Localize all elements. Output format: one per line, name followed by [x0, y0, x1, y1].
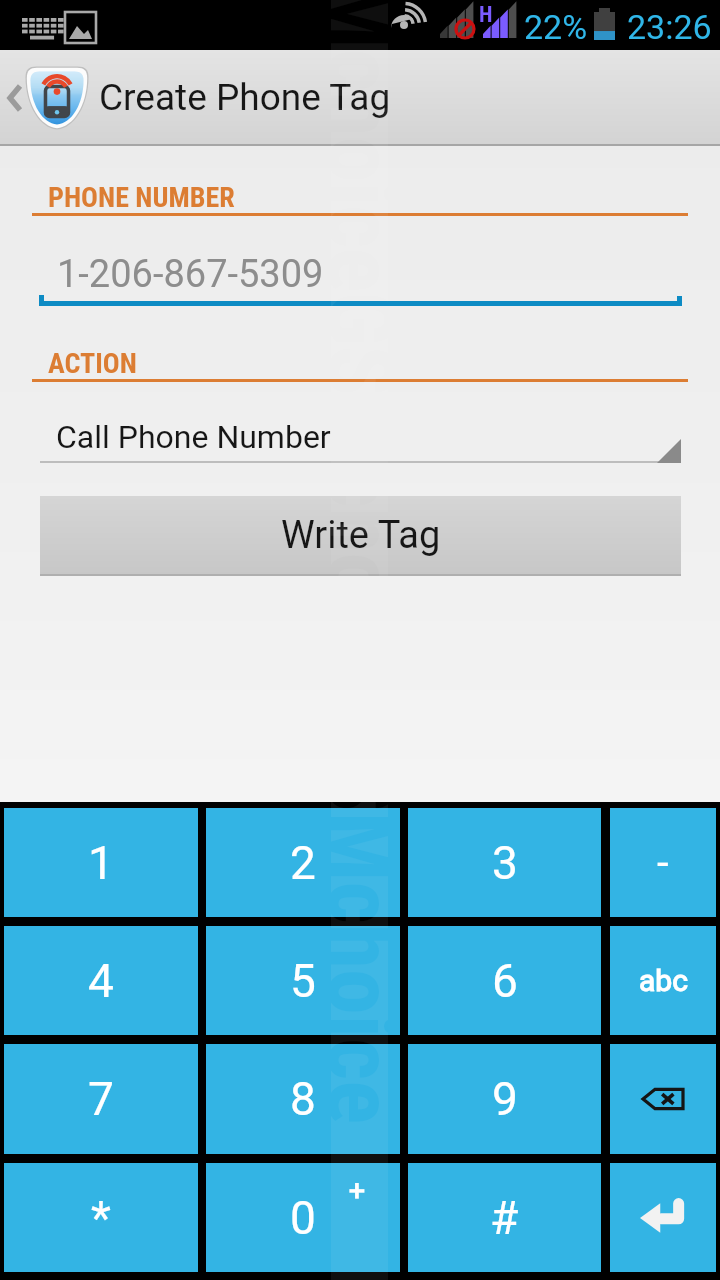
staticText: 9: [492, 1072, 518, 1126]
staticText: 23:26: [627, 7, 712, 47]
staticText: 2: [290, 836, 316, 890]
staticText: PHONE NUMBER: [48, 181, 235, 214]
button[interactable]: *: [4, 1163, 198, 1272]
staticText: 8: [290, 1072, 316, 1126]
staticText: 6: [492, 954, 518, 1008]
button[interactable]: Enter: [610, 1163, 716, 1272]
staticText: 1-206-867-5309: [57, 252, 324, 297]
staticText: abc: [639, 963, 688, 998]
staticText: H: [479, 2, 493, 28]
staticText: Call Phone Number: [56, 418, 331, 456]
staticText: Create Phone Tag: [99, 76, 391, 119]
staticText: ACTION: [48, 347, 137, 380]
button[interactable]: Backspace: [610, 1044, 716, 1154]
button[interactable]: #: [408, 1163, 601, 1272]
button[interactable]: 3: [408, 808, 601, 917]
button[interactable]: 2: [206, 808, 400, 917]
button[interactable]: Navigate up: [0, 50, 720, 146]
button[interactable]: 1: [4, 808, 198, 917]
staticText: 4: [88, 954, 114, 1008]
button[interactable]: 9: [408, 1044, 601, 1154]
staticText: 22%: [524, 7, 588, 47]
button[interactable]: 0: [206, 1163, 400, 1272]
button[interactable]: 5: [206, 926, 400, 1035]
staticText: 5: [290, 954, 316, 1008]
staticText: Write Tag: [281, 513, 441, 558]
button[interactable]: 4: [4, 926, 198, 1035]
staticText: 7: [88, 1072, 114, 1126]
button[interactable]: 6: [408, 926, 601, 1035]
staticText: 1: [88, 836, 114, 890]
button[interactable]: 1-206-867-5309: [32, 230, 688, 306]
staticText: 0: [290, 1191, 316, 1245]
button[interactable]: abc: [610, 926, 716, 1035]
button[interactable]: 8: [206, 1044, 400, 1154]
staticText: *: [91, 1191, 111, 1245]
button[interactable]: Call Phone Number: [40, 402, 681, 464]
staticText: #: [490, 1191, 519, 1245]
staticText: +: [349, 1174, 365, 1207]
button[interactable]: 7: [4, 1044, 198, 1154]
staticText: -: [657, 838, 669, 887]
staticText: 3: [492, 836, 518, 890]
button[interactable]: -: [610, 808, 716, 917]
button[interactable]: Write Tag: [40, 496, 681, 575]
